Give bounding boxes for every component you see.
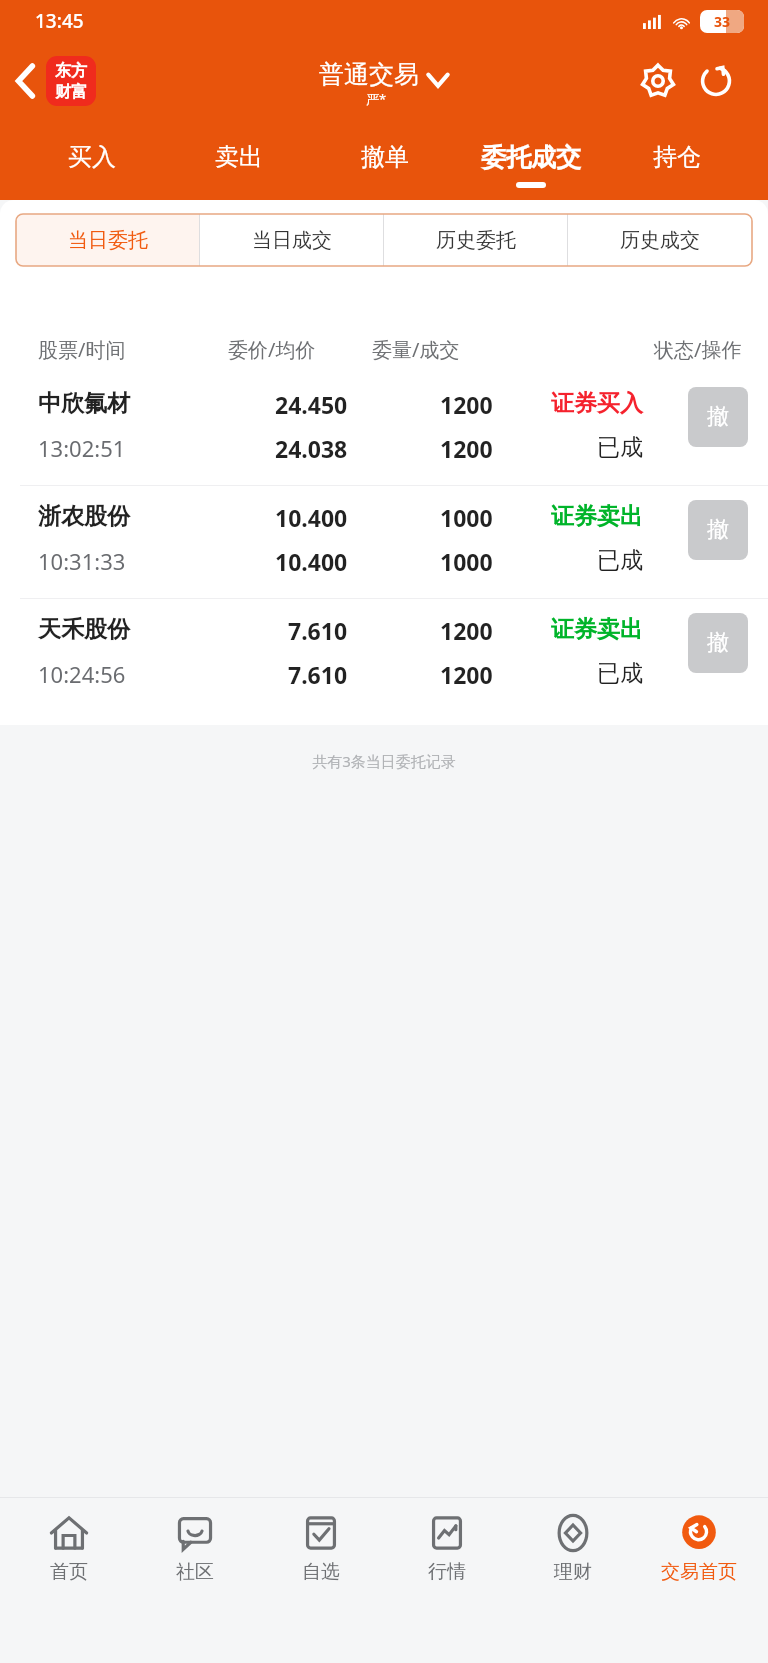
staticText: 普通交易: [319, 59, 419, 90]
button[interactable]: 委托成交: [458, 120, 604, 200]
staticText: 证券卖出: [551, 502, 643, 531]
staticText: 严*: [366, 90, 387, 108]
button[interactable]: 交易首页: [636, 1498, 762, 1608]
staticText: 已成: [597, 433, 643, 462]
staticText: 持仓: [653, 142, 701, 172]
button[interactable]: 中欣氟材: [0, 373, 768, 485]
staticText: 7.610: [288, 615, 348, 646]
button[interactable]: 买入: [18, 120, 165, 200]
staticText: 自选: [302, 1560, 340, 1584]
staticText: 33: [714, 12, 731, 31]
staticText: 股票/时间: [38, 336, 126, 363]
staticText: 1200: [440, 615, 493, 646]
staticText: 卖出: [215, 142, 263, 172]
staticText: 首页: [50, 1560, 88, 1584]
staticText: 已成: [597, 659, 643, 688]
staticText: 历史成交: [620, 228, 700, 253]
staticText: 委托成交: [481, 142, 581, 173]
staticText: 10:24:56: [38, 659, 126, 689]
staticText: 当日委托: [68, 228, 148, 253]
staticText: 浙农股份: [38, 502, 130, 531]
staticText: 财富: [55, 82, 87, 102]
button[interactable]: 行情: [384, 1498, 510, 1608]
staticText: 1000: [440, 502, 493, 533]
button[interactable]: 首页: [6, 1498, 132, 1608]
button[interactable]: 东方财富: [46, 56, 96, 106]
staticText: 状态/操作: [654, 336, 742, 363]
button[interactable]: 天禾股份: [0, 599, 768, 711]
button[interactable]: 社区: [132, 1498, 258, 1608]
staticText: 10:31:33: [38, 546, 126, 576]
staticText: 证券买入: [551, 389, 643, 418]
button[interactable]: Settings: [632, 55, 684, 107]
button[interactable]: 理财: [510, 1498, 636, 1608]
staticText: 7.610: [288, 659, 348, 690]
staticText: 撤单: [361, 142, 409, 172]
staticText: 1000: [440, 546, 493, 577]
staticText: 交易首页: [661, 1560, 737, 1584]
button[interactable]: 卖出: [165, 120, 312, 200]
button[interactable]: 自选: [258, 1498, 384, 1608]
staticText: 撤: [707, 403, 729, 431]
button[interactable]: Refresh: [690, 55, 742, 107]
button[interactable]: 撤: [688, 387, 748, 447]
staticText: 委价/均价: [228, 336, 316, 363]
staticText: 13:02:51: [38, 433, 126, 463]
button[interactable]: 持仓: [604, 120, 750, 200]
staticText: 委量/成交: [372, 336, 460, 363]
staticText: 10.400: [275, 546, 348, 577]
staticText: 行情: [428, 1560, 466, 1584]
staticText: 已成: [597, 546, 643, 575]
button[interactable]: 历史成交: [568, 214, 752, 266]
button[interactable]: 撤: [688, 613, 748, 673]
staticText: 24.038: [275, 433, 348, 464]
staticText: 1200: [440, 659, 493, 690]
staticText: 社区: [176, 1560, 214, 1584]
staticText: 当日成交: [252, 228, 332, 253]
staticText: 天禾股份: [38, 615, 130, 644]
staticText: 13:45: [35, 8, 84, 34]
staticText: 撤: [707, 516, 729, 544]
staticText: 24.450: [275, 389, 348, 420]
staticText: 证券卖出: [551, 615, 643, 644]
staticText: 1200: [440, 389, 493, 420]
staticText: 历史委托: [436, 228, 516, 253]
button[interactable]: 撤: [688, 500, 748, 560]
staticText: 东方: [55, 61, 87, 81]
staticText: 撤: [707, 629, 729, 657]
button[interactable]: 当日委托: [16, 214, 200, 266]
button[interactable]: 浙农股份: [0, 486, 768, 598]
staticText: 1200: [440, 433, 493, 464]
staticText: 共有3条当日委托记录: [0, 751, 768, 771]
button[interactable]: Back: [0, 55, 52, 107]
staticText: 中欣氟材: [38, 389, 130, 418]
button[interactable]: 撤单: [312, 120, 458, 200]
staticText: 买入: [68, 142, 116, 172]
button[interactable]: 当日成交: [200, 214, 384, 266]
button[interactable]: 历史委托: [384, 214, 568, 266]
staticText: 理财: [554, 1560, 592, 1584]
button[interactable]: 普通交易: [319, 59, 449, 108]
staticText: 10.400: [275, 502, 348, 533]
